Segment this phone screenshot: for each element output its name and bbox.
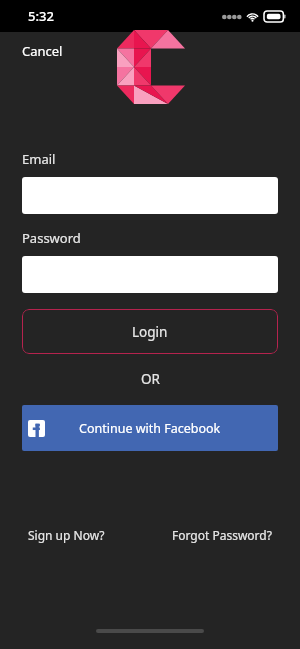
staticText: Forgot Password?: [172, 527, 272, 543]
staticText: Continue with Facebook: [79, 420, 221, 437]
other: App logo: [117, 30, 185, 104]
button[interactable]: Forgot Password?: [166, 523, 278, 547]
button[interactable]: Cancel: [14, 37, 71, 65]
staticText: Cancel: [22, 42, 63, 60]
staticText: OR: [141, 370, 160, 388]
button[interactable]: Sign up Now?: [22, 523, 111, 547]
button[interactable]: Continue with Facebook: [22, 405, 278, 451]
staticText: Login: [132, 323, 168, 341]
staticText: Password: [22, 229, 81, 247]
button[interactable]: Password input: [22, 256, 278, 293]
button[interactable]: Login: [22, 309, 278, 354]
button[interactable]: Email input: [22, 177, 278, 214]
staticText: 5:32: [28, 7, 54, 25]
staticText: Sign up Now?: [28, 527, 105, 543]
staticText: Email: [22, 150, 56, 168]
